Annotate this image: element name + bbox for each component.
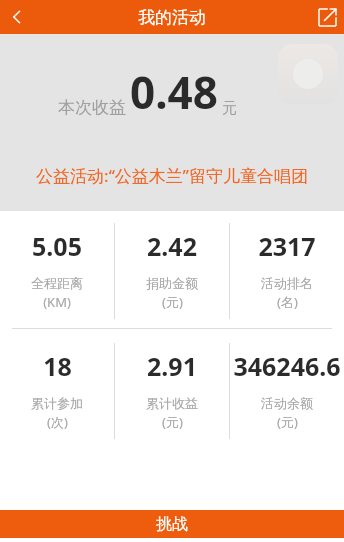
staticText: (次) bbox=[47, 413, 68, 431]
button[interactable]: 2317 bbox=[230, 223, 344, 311]
staticText: 活动排名 bbox=[261, 275, 313, 291]
staticText: 346246.68 bbox=[230, 349, 344, 383]
staticText: 2.91 bbox=[147, 349, 197, 383]
staticText: 2.42 bbox=[147, 229, 197, 263]
staticText: 累计收益 bbox=[146, 395, 198, 411]
staticText: 5.05 bbox=[32, 229, 82, 263]
staticText: (KM) bbox=[43, 293, 71, 311]
staticText: 18 bbox=[43, 349, 72, 383]
staticText: 捐助金额 bbox=[146, 275, 198, 291]
staticText: 累计参加 bbox=[31, 395, 83, 411]
button[interactable]: Back bbox=[0, 0, 34, 34]
staticText: 0.48 bbox=[130, 62, 218, 122]
staticText: 公益活动:“公益木兰”留守儿童合唱团 bbox=[0, 164, 344, 187]
button[interactable]: 5.05 bbox=[0, 223, 114, 311]
staticText: 2317 bbox=[258, 229, 316, 263]
button[interactable]: Share bbox=[310, 0, 344, 34]
button[interactable]: 18 bbox=[0, 343, 114, 431]
staticText: 元 bbox=[222, 99, 237, 118]
button[interactable]: 346246.68 bbox=[230, 343, 344, 431]
staticText: 本次收益 bbox=[58, 97, 126, 118]
staticText: (元) bbox=[162, 413, 183, 431]
staticText: (元) bbox=[277, 413, 298, 431]
staticText: 全程距离 bbox=[31, 275, 83, 291]
staticText: 挑战 bbox=[156, 514, 188, 534]
button[interactable]: 2.91 bbox=[115, 343, 229, 431]
staticText: 活动余额 bbox=[261, 395, 313, 411]
staticText: (元) bbox=[162, 293, 183, 311]
staticText: 我的活动 bbox=[138, 7, 206, 28]
button[interactable]: 2.42 bbox=[115, 223, 229, 311]
staticText: (名) bbox=[277, 293, 298, 311]
button[interactable]: 挑战 bbox=[0, 510, 344, 538]
